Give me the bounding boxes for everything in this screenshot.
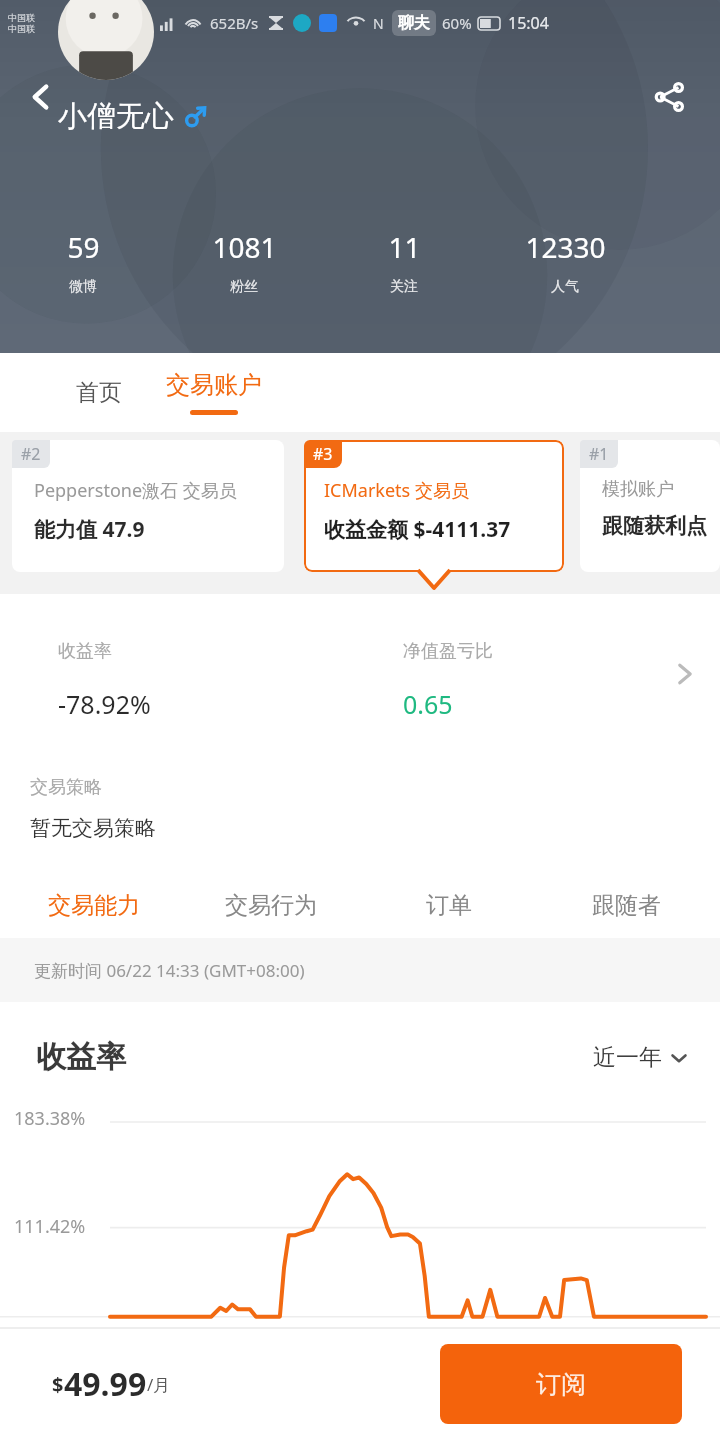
staticText: 能力值 47.9 [34, 515, 145, 544]
staticText: 收益金额 $-4111.37 [324, 515, 511, 544]
button[interactable]: #2 [12, 440, 284, 578]
staticText: 0.65 [403, 687, 453, 721]
staticText: 49.99 [64, 1362, 147, 1406]
button[interactable]: 收益率 [0, 594, 720, 754]
staticText: /月 [147, 1373, 171, 1396]
button[interactable]: 订单 [369, 872, 529, 938]
staticText: 暂无交易策略 [30, 815, 156, 841]
staticText: 1081 [212, 228, 277, 266]
staticText: 183.38% [14, 1106, 86, 1131]
button[interactable]: Back [14, 70, 68, 124]
staticText: 订阅 [536, 1369, 586, 1400]
staticText: 中国联 [8, 23, 35, 34]
staticText: 收益率 [36, 1038, 126, 1076]
staticText: 交易行为 [225, 891, 317, 920]
staticText: $ [52, 1371, 64, 1398]
staticText: 人气 [551, 278, 579, 296]
staticText: 订单 [426, 891, 472, 920]
button[interactable]: 12330 [510, 228, 620, 296]
staticText: 模拟账户 [602, 478, 674, 501]
button[interactable]: 1081 [189, 228, 299, 296]
staticText: 60% [442, 13, 472, 33]
button[interactable]: #1 [580, 440, 720, 578]
staticText: 11 [388, 228, 421, 266]
staticText: 12330 [525, 228, 606, 266]
staticText: -78.92% [58, 687, 151, 721]
staticText: 跟随者 [592, 891, 661, 920]
staticText: 更新时间 06/22 14:33 (GMT+08:00) [34, 959, 305, 982]
staticText: 15:04 [508, 12, 549, 34]
button[interactable]: Share [640, 68, 698, 126]
staticText: 交易能力 [48, 891, 140, 920]
staticText: 交易策略 [30, 776, 102, 799]
button[interactable]: 59 [28, 228, 138, 296]
button[interactable]: 跟随者 [546, 872, 706, 938]
button[interactable]: 订阅 [440, 1344, 682, 1424]
button[interactable]: 首页 [64, 353, 134, 432]
staticText: 中国联 [8, 12, 35, 23]
button[interactable]: 交易行为 [191, 872, 351, 938]
staticText: 关注 [390, 278, 418, 296]
staticText: #3 [313, 443, 333, 465]
staticText: 交易账户 [166, 370, 262, 400]
staticText: #1 [589, 443, 609, 465]
staticText: 净值盈亏比 [403, 640, 493, 663]
staticText: 近一年 [593, 1043, 662, 1072]
staticText: Pepperstone激石 交易员 [34, 478, 237, 503]
staticText: 聊夫 [398, 13, 430, 33]
button[interactable]: 近一年 [593, 1043, 688, 1072]
button[interactable]: 11 [349, 228, 459, 296]
staticText: 微博 [69, 278, 97, 296]
staticText: 小僧无心 [58, 98, 174, 135]
staticText: #2 [21, 443, 41, 465]
staticText: 收益率 [58, 640, 112, 663]
button[interactable]: #3 [304, 440, 564, 582]
button[interactable]: Avatar [58, 0, 154, 80]
staticText: 跟随获利点数 [602, 513, 720, 539]
staticText: 652B/s [210, 13, 259, 33]
staticText: 111.42% [14, 1214, 86, 1239]
staticText: N [373, 14, 384, 33]
staticText: ICMarkets 交易员 [324, 478, 469, 503]
staticText: 59 [67, 228, 100, 266]
button[interactable]: 交易策略 [0, 754, 720, 872]
staticText: 首页 [76, 378, 122, 407]
staticText: 粉丝 [230, 278, 258, 296]
button[interactable]: 交易能力 [14, 872, 174, 938]
button[interactable]: 交易账户 [166, 353, 262, 432]
